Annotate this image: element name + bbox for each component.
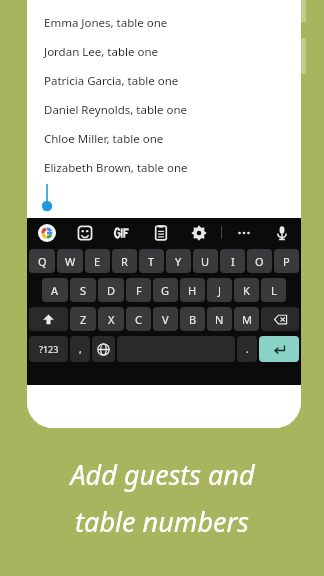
button[interactable]: Settings xyxy=(189,223,209,243)
button[interactable]: GIF xyxy=(113,223,133,243)
button[interactable]: C xyxy=(126,307,151,331)
button[interactable]: . xyxy=(237,336,257,362)
button[interactable]: Jordan Lee, table one xyxy=(44,37,301,66)
button[interactable]: N xyxy=(207,307,232,331)
button[interactable]: Enter xyxy=(259,336,299,362)
button[interactable]: More options xyxy=(234,223,254,243)
button[interactable]: F xyxy=(126,278,151,302)
staticText: Jordan Lee, table one xyxy=(44,44,158,60)
button[interactable]: Y xyxy=(166,249,191,273)
staticText: I xyxy=(231,254,235,269)
button[interactable]: L xyxy=(261,278,286,302)
staticText: P xyxy=(283,254,290,269)
button[interactable]: E xyxy=(85,249,110,273)
staticText: W xyxy=(65,254,76,269)
button[interactable]: M xyxy=(234,307,259,331)
button[interactable]: Emma Jones, table one xyxy=(44,8,301,37)
button[interactable]: P xyxy=(274,249,299,273)
staticText: A xyxy=(51,283,59,298)
staticText: V xyxy=(162,312,169,327)
button[interactable]: Chloe Miller, table one xyxy=(44,124,301,153)
staticText: L xyxy=(271,283,277,298)
button[interactable]: Clipboard xyxy=(151,223,171,243)
staticText: M xyxy=(242,312,252,327)
staticText: . xyxy=(246,342,249,356)
staticText: J xyxy=(218,283,222,298)
staticText: ?123 xyxy=(39,343,59,355)
button[interactable]: Stickers xyxy=(75,223,95,243)
staticText: S xyxy=(80,283,87,298)
staticText: R xyxy=(121,254,128,269)
staticText: table numbers xyxy=(75,503,249,540)
button[interactable]: Backspace xyxy=(261,307,299,331)
button[interactable]: Q xyxy=(29,249,55,273)
button[interactable]: G xyxy=(153,278,178,302)
button[interactable]: ?123 xyxy=(29,336,68,362)
button[interactable]: Patricia Garcia, table one xyxy=(44,66,301,95)
staticText: C xyxy=(135,312,142,327)
button[interactable]: O xyxy=(247,249,272,273)
staticText: E xyxy=(94,254,101,269)
button[interactable]: , xyxy=(70,336,90,362)
button[interactable]: Change language xyxy=(92,336,115,362)
button[interactable]: A xyxy=(42,278,68,302)
button[interactable]: Elizabeth Brown, table one xyxy=(44,153,301,182)
staticText: D xyxy=(107,283,116,298)
staticText: Emma Jones, table one xyxy=(44,15,168,31)
staticText: , xyxy=(79,342,82,356)
staticText: Z xyxy=(80,312,87,327)
staticText: U xyxy=(201,254,210,269)
button[interactable]: W xyxy=(57,249,83,273)
staticText: B xyxy=(189,312,197,327)
staticText: T xyxy=(148,254,155,269)
staticText: N xyxy=(215,312,224,327)
staticText: Y xyxy=(175,254,182,269)
button[interactable]: Z xyxy=(70,307,96,331)
button[interactable]: B xyxy=(180,307,205,331)
button[interactable]: H xyxy=(180,278,205,302)
staticText: X xyxy=(108,312,115,327)
staticText: Patricia Garcia, table one xyxy=(44,73,179,89)
button[interactable]: Daniel Reynolds, table one xyxy=(44,95,301,124)
button[interactable]: Shift xyxy=(29,307,68,331)
staticText: Add guests and xyxy=(70,456,255,493)
staticText: H xyxy=(188,283,197,298)
button[interactable]: U xyxy=(193,249,218,273)
staticText: K xyxy=(243,283,250,298)
staticText: O xyxy=(255,254,264,269)
button[interactable]: V xyxy=(153,307,178,331)
button[interactable]: I xyxy=(220,249,245,273)
staticText: F xyxy=(136,283,142,298)
button[interactable]: J xyxy=(207,278,232,302)
button[interactable]: D xyxy=(98,278,124,302)
button[interactable]: R xyxy=(112,249,137,273)
staticText: Daniel Reynolds, table one xyxy=(44,102,187,118)
button[interactable]: X xyxy=(98,307,124,331)
button[interactable]: K xyxy=(234,278,259,302)
button[interactable]: Google search xyxy=(36,222,58,244)
button[interactable]: Voice input xyxy=(272,223,292,243)
button[interactable]: S xyxy=(70,278,96,302)
staticText: Q xyxy=(38,254,47,269)
staticText: Elizabeth Brown, table one xyxy=(44,160,188,176)
staticText: Chloe Miller, table one xyxy=(44,131,164,147)
button[interactable]: T xyxy=(139,249,164,273)
staticText: G xyxy=(161,283,170,298)
